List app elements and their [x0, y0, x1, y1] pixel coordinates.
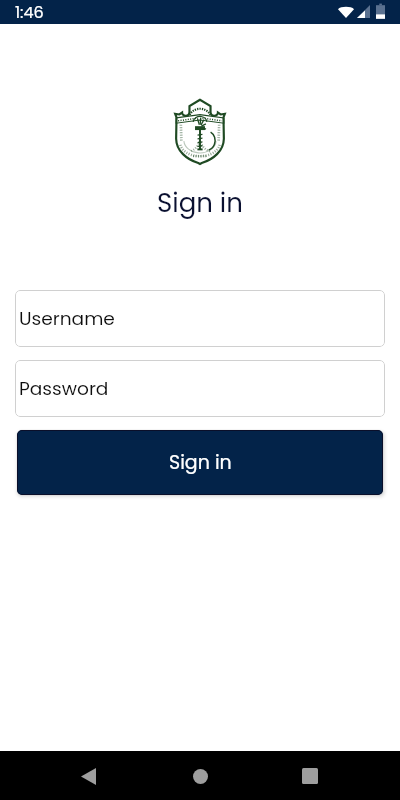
button[interactable]: Recent apps: [286, 752, 334, 800]
button[interactable]: Back: [64, 752, 112, 800]
staticText: Sign in: [157, 185, 243, 221]
staticText: Password: [19, 375, 109, 401]
button[interactable]: Home: [176, 752, 224, 800]
button[interactable]: Password: [15, 360, 385, 417]
button[interactable]: Username: [15, 290, 385, 347]
staticText: 1:46: [15, 1, 44, 23]
button[interactable]: Sign in: [17, 430, 383, 495]
staticText: Username: [19, 305, 115, 331]
staticText: Sign in: [169, 449, 232, 476]
